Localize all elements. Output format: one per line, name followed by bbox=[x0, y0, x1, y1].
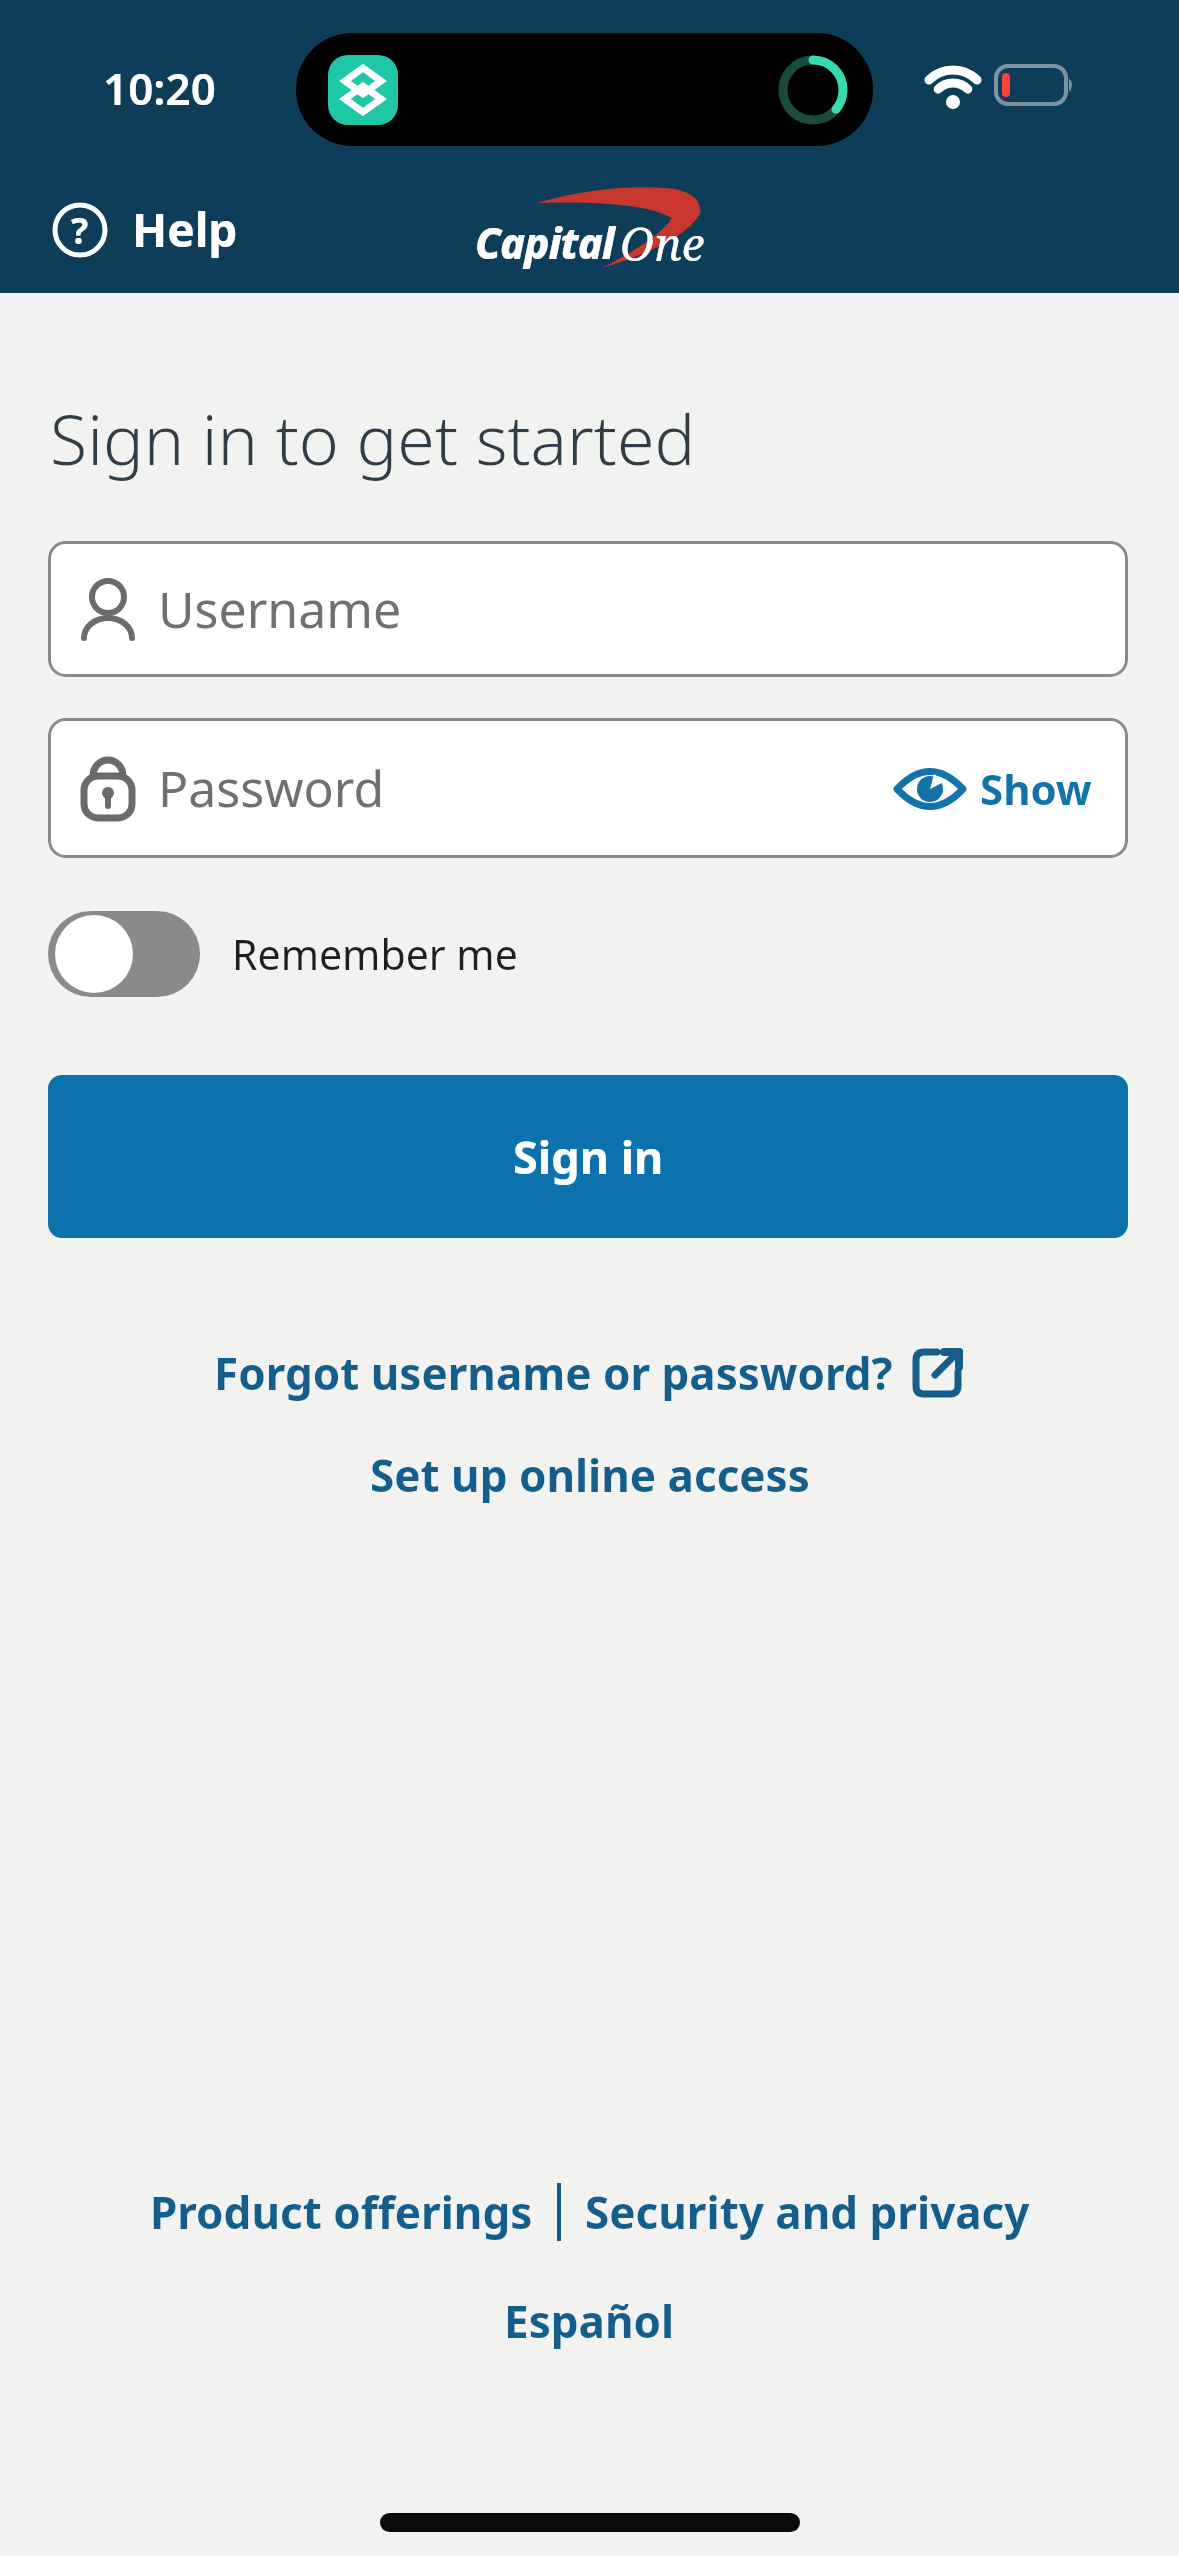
button[interactable]: Security and privacy bbox=[585, 2182, 1030, 2242]
button[interactable]: Español bbox=[504, 2291, 675, 2351]
staticText: Help bbox=[132, 198, 238, 261]
button[interactable]: Forgot username or password? bbox=[214, 1343, 965, 1403]
staticText: Forgot username or password? bbox=[214, 1343, 893, 1403]
button[interactable]: Password bbox=[48, 718, 1128, 858]
button[interactable]: Product offerings bbox=[150, 2182, 533, 2242]
button[interactable]: Show bbox=[896, 760, 1092, 817]
button[interactable]: Username bbox=[48, 541, 1128, 677]
button[interactable]: Set up online access bbox=[370, 1445, 810, 1505]
staticText: Username bbox=[158, 575, 402, 643]
button[interactable]: Sign in bbox=[48, 1075, 1128, 1238]
staticText: Sign in to get started bbox=[50, 392, 696, 485]
staticText: Password bbox=[158, 754, 385, 822]
staticText: Remember me bbox=[232, 926, 518, 982]
button[interactable]: Remember me bbox=[48, 911, 518, 997]
staticText: Capital bbox=[475, 214, 614, 271]
staticText: ? bbox=[71, 206, 89, 255]
button[interactable]: ? bbox=[52, 198, 238, 261]
staticText: 10:20 bbox=[103, 58, 216, 118]
staticText: One bbox=[620, 212, 705, 275]
staticText: Show bbox=[980, 760, 1092, 817]
staticText: Sign in bbox=[513, 1126, 664, 1187]
